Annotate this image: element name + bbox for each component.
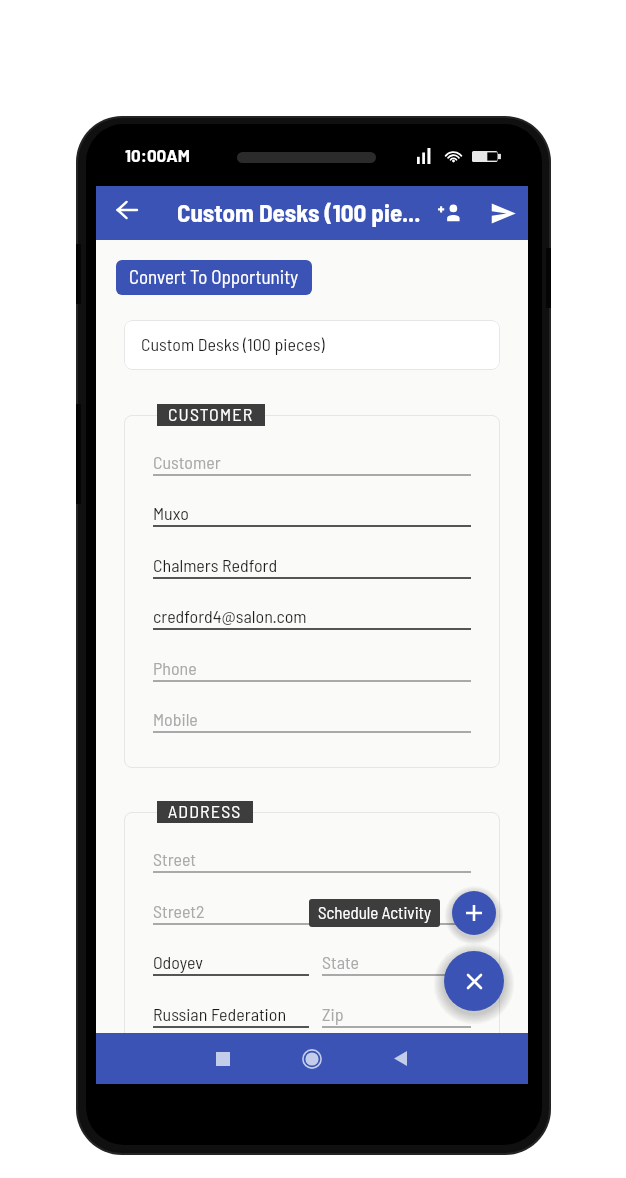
staticText: Mobile bbox=[153, 708, 198, 730]
button[interactable]: Close bbox=[444, 951, 504, 1011]
button[interactable]: Odoyev bbox=[153, 937, 309, 976]
staticText: Zip bbox=[322, 1003, 344, 1025]
staticText: 10:00AM bbox=[125, 145, 190, 165]
button[interactable]: Send bbox=[478, 186, 528, 240]
staticText: Street2 bbox=[153, 900, 205, 922]
button[interactable]: Add contact bbox=[426, 186, 474, 240]
staticText: Phone bbox=[153, 657, 197, 679]
staticText: credford4@salon.com bbox=[153, 605, 307, 627]
staticText: Russian Federation bbox=[153, 1003, 287, 1025]
button[interactable]: Muxo bbox=[153, 488, 471, 527]
button[interactable]: Street2 bbox=[153, 886, 471, 925]
button[interactable]: Phone bbox=[153, 643, 471, 682]
button[interactable]: Custom Desks (100 pieces) bbox=[124, 320, 500, 370]
staticText: Custom Desks (100 pie... bbox=[177, 197, 421, 227]
button[interactable]: Home bbox=[283, 1033, 341, 1084]
staticText: Custom Desks (100 pieces) bbox=[141, 333, 325, 355]
button[interactable]: Customer bbox=[153, 437, 471, 476]
staticText: Street bbox=[153, 848, 197, 870]
button[interactable]: Schedule Activity bbox=[452, 891, 496, 935]
button[interactable]: Convert To Opportunity bbox=[116, 260, 312, 295]
button[interactable]: credford4@salon.com bbox=[153, 591, 471, 630]
button[interactable]: Back bbox=[103, 186, 151, 240]
staticText: Odoyev bbox=[153, 951, 203, 973]
button[interactable]: Recent apps bbox=[194, 1033, 252, 1084]
button[interactable]: Street bbox=[153, 834, 471, 873]
staticText: State bbox=[322, 951, 359, 973]
button[interactable]: Chalmers Redford bbox=[153, 540, 471, 579]
staticText: Schedule Activity bbox=[318, 902, 431, 922]
staticText: Convert To Opportunity bbox=[129, 265, 299, 288]
staticText: Muxo bbox=[153, 502, 189, 524]
button[interactable]: Mobile bbox=[153, 694, 471, 733]
button[interactable]: CUSTOMER bbox=[157, 404, 265, 426]
button[interactable]: ADDRESS bbox=[157, 801, 253, 823]
staticText: Chalmers Redford bbox=[153, 554, 278, 576]
button[interactable]: Russian Federation bbox=[153, 989, 309, 1028]
button[interactable]: Zip bbox=[322, 989, 471, 1028]
button[interactable]: Back bbox=[371, 1033, 429, 1084]
button[interactable]: Schedule Activity bbox=[309, 899, 440, 927]
button[interactable]: State bbox=[322, 937, 471, 976]
staticText: Customer bbox=[153, 451, 221, 473]
staticText: CUSTOMER bbox=[168, 403, 254, 425]
staticText: ADDRESS bbox=[168, 800, 242, 822]
